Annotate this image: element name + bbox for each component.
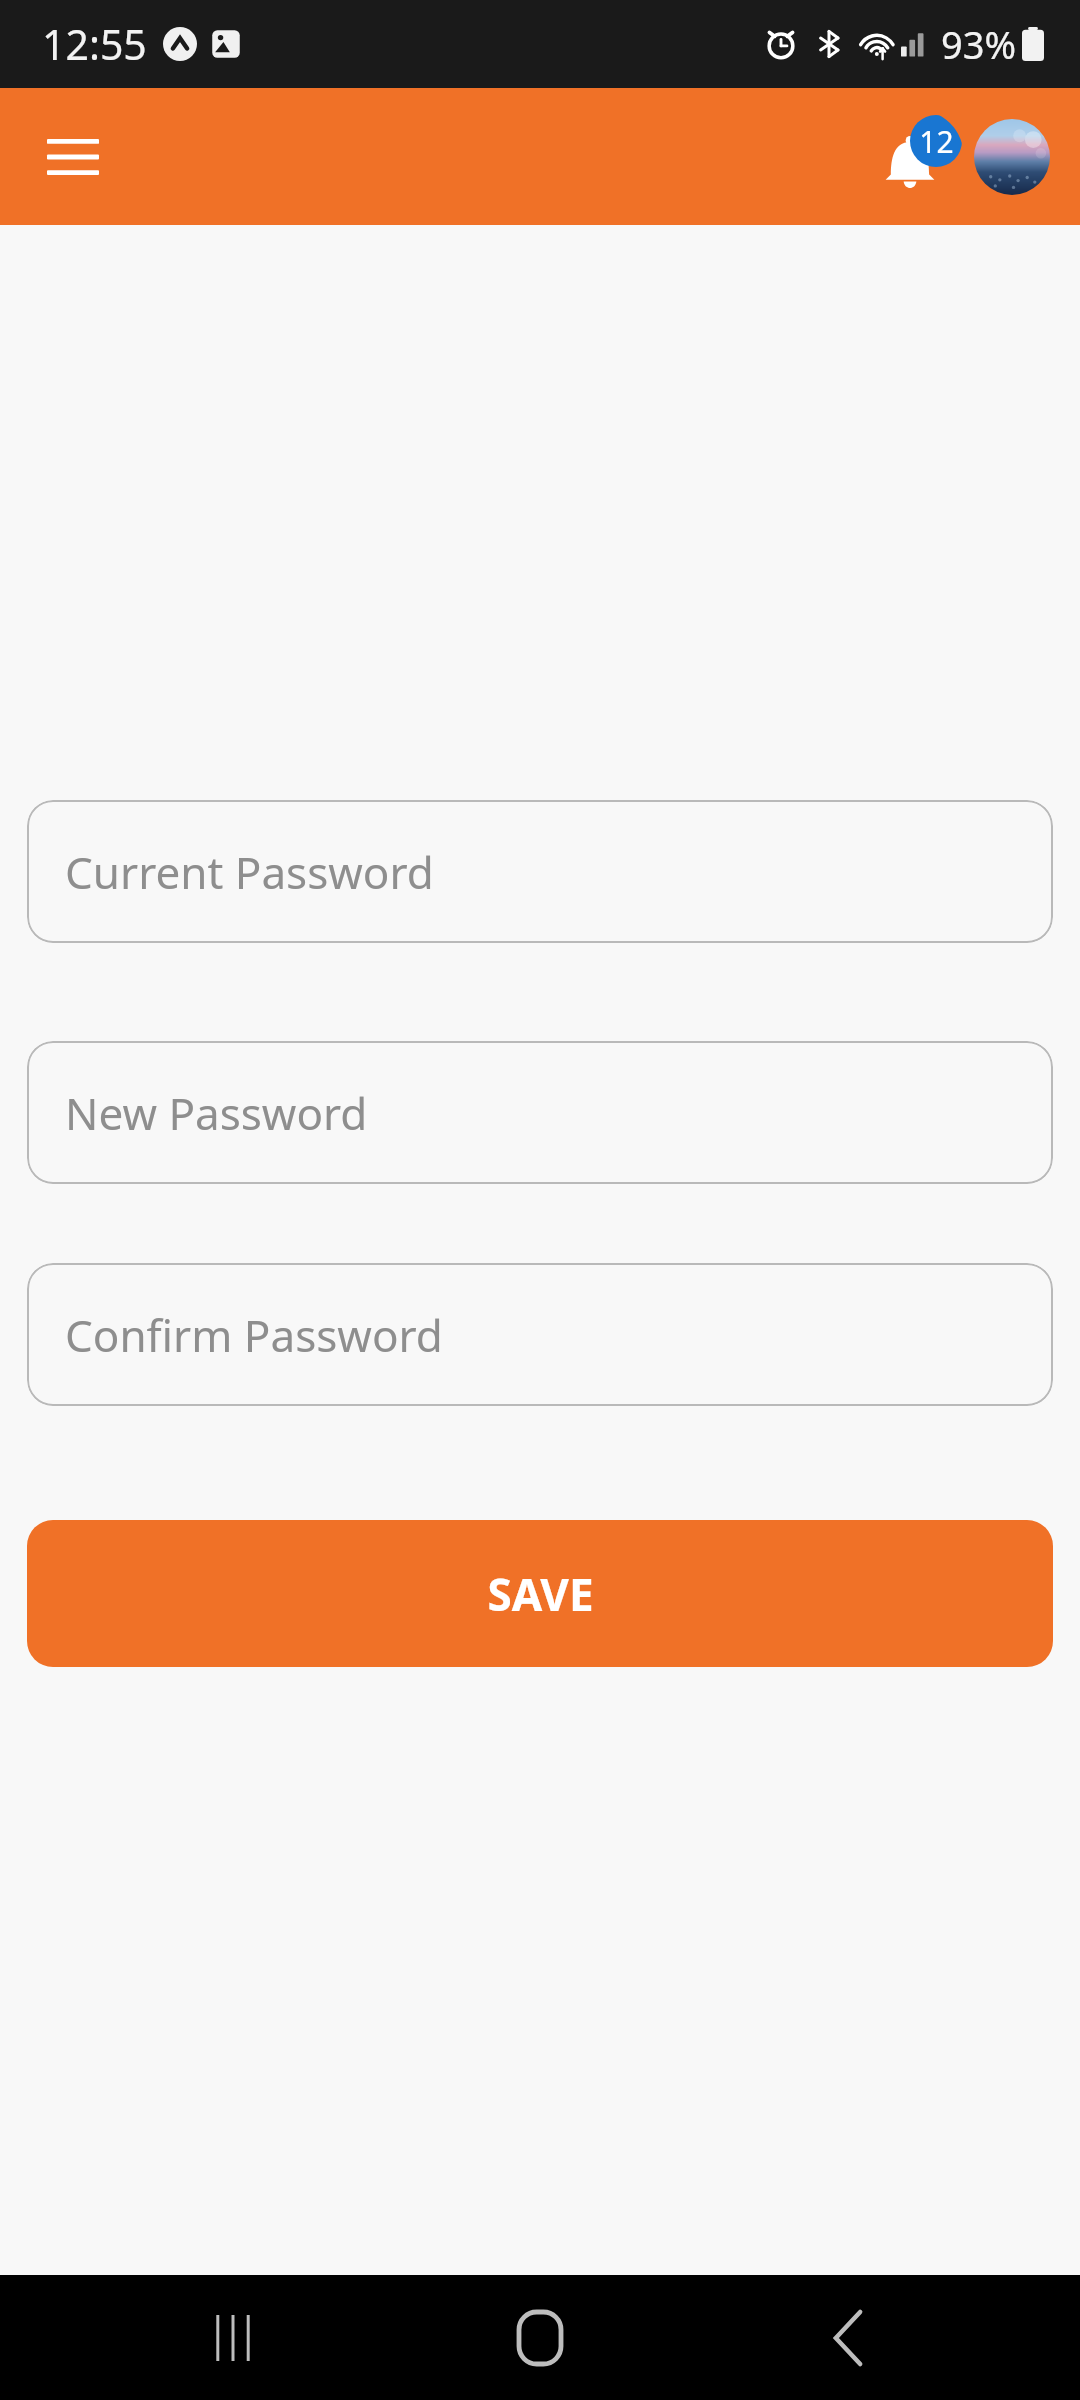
button[interactable]: SAVE — [27, 1520, 1053, 1667]
button[interactable]: Profile — [974, 119, 1050, 195]
staticText: 12:55 — [42, 16, 147, 72]
button[interactable]: New Password — [27, 1041, 1053, 1184]
button[interactable]: Back — [773, 2283, 923, 2393]
staticText: 12 — [919, 121, 954, 162]
button[interactable]: Current Password — [27, 800, 1053, 943]
button[interactable]: Home — [465, 2283, 615, 2393]
button[interactable]: Recent apps — [158, 2283, 308, 2393]
staticText: Current Password — [65, 842, 434, 902]
staticText: 93% — [941, 18, 1017, 70]
button[interactable]: Confirm Password — [27, 1263, 1053, 1406]
button[interactable]: Notifications, 12 new — [868, 109, 964, 205]
button[interactable]: Open navigation menu — [34, 118, 112, 196]
staticText: SAVE — [487, 1564, 594, 1624]
staticText: New Password — [65, 1083, 368, 1143]
staticText: Confirm Password — [65, 1305, 443, 1365]
